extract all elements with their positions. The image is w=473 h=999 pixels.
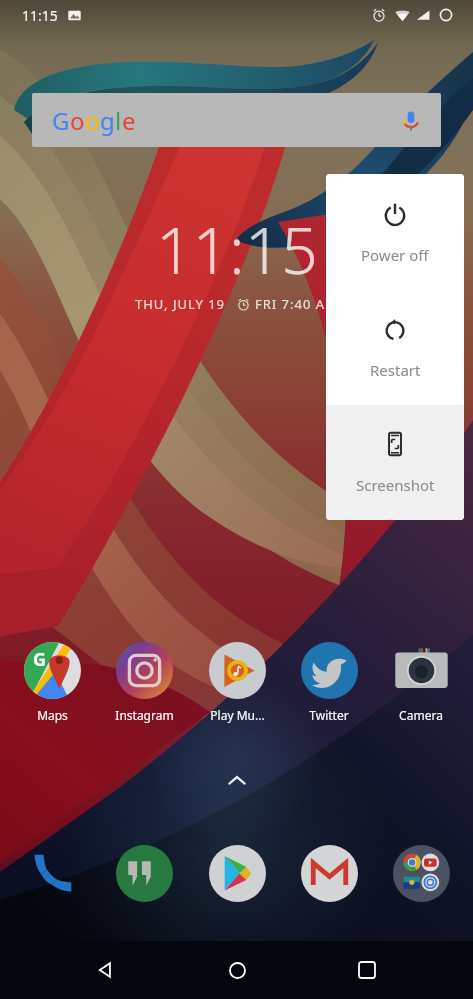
staticText: Play Mu... xyxy=(210,707,265,723)
button[interactable]: Back xyxy=(82,946,130,994)
button[interactable] xyxy=(377,845,465,902)
staticText: THU, JULY 19 xyxy=(135,295,226,313)
button[interactable] xyxy=(100,845,188,902)
staticText: G xyxy=(33,647,47,672)
button[interactable] xyxy=(193,845,281,902)
button[interactable] xyxy=(8,845,96,902)
button[interactable]: Power off xyxy=(326,174,464,290)
staticText: FRI 7:40 AM xyxy=(255,295,338,313)
button[interactable]: Home xyxy=(213,946,261,994)
other: Voice search xyxy=(399,109,423,133)
button[interactable]: G xyxy=(32,93,441,147)
button[interactable]: Instagram xyxy=(100,640,188,725)
staticText: 11:15 xyxy=(156,206,318,293)
button[interactable]: Play Mu... xyxy=(193,640,281,725)
staticText: G xyxy=(52,104,70,137)
staticText: Maps xyxy=(37,707,68,723)
staticText: Camera xyxy=(399,707,443,723)
button[interactable]: Recents xyxy=(343,946,391,994)
button[interactable]: Twitter xyxy=(285,640,373,725)
staticText: g xyxy=(100,104,115,137)
staticText: Restart xyxy=(370,360,421,380)
staticText: Power off xyxy=(361,245,429,265)
staticText: Twitter xyxy=(309,707,349,723)
button[interactable]: G xyxy=(8,640,96,725)
button[interactable]: Restart xyxy=(326,290,464,405)
staticText: 11:15 xyxy=(22,6,58,25)
staticText: o xyxy=(70,104,85,137)
button[interactable]: Screenshot xyxy=(326,405,464,520)
staticText: o xyxy=(85,104,100,137)
staticText: e xyxy=(122,104,136,137)
button[interactable]: Camera xyxy=(377,640,465,725)
staticText: Screenshot xyxy=(356,475,435,495)
staticText: Instagram xyxy=(115,707,174,723)
other: All apps xyxy=(226,770,248,792)
button[interactable] xyxy=(285,845,373,902)
staticText: l xyxy=(115,104,122,137)
